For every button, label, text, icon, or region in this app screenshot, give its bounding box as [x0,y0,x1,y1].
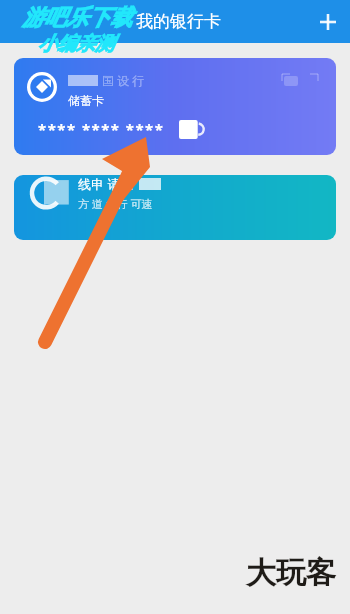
button[interactable]: 国 设 行 [14,58,336,155]
staticText: 国 设 行 [102,72,145,88]
button[interactable]: 添加银行卡 [306,0,350,43]
staticText: 方 道 多行 可速 [78,196,153,211]
staticText: 小编亲测 [38,32,114,56]
staticText: 线申 请信 [78,175,134,193]
staticText: **** **** **** [38,119,165,139]
staticText: 我的银行卡 [136,11,221,32]
staticText: 游吧乐下载 [22,4,132,32]
button[interactable]: 线申 请信 [14,175,336,240]
staticText: 储蓄卡 [68,93,104,108]
staticText: 大玩客 [246,554,336,592]
